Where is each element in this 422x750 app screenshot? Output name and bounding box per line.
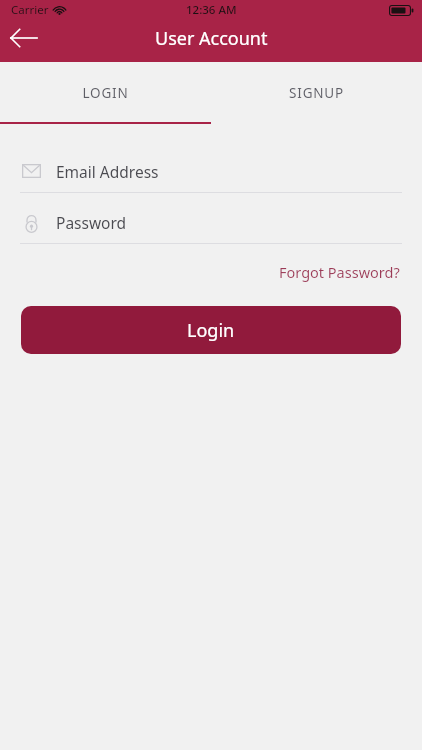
staticText: Carrier <box>11 2 49 18</box>
button[interactable]: Forgot Password? <box>277 258 402 286</box>
button[interactable]: Email Address <box>0 154 422 188</box>
staticText: Login <box>187 318 235 343</box>
button[interactable]: LOGIN <box>0 62 211 124</box>
button[interactable]: Password <box>0 205 422 239</box>
staticText: Email Address <box>56 161 159 182</box>
button[interactable]: Login <box>21 306 401 354</box>
staticText: LOGIN <box>82 84 129 102</box>
staticText: SIGNUP <box>289 84 344 102</box>
button[interactable]: SIGNUP <box>211 62 422 124</box>
staticText: User Account <box>155 26 268 51</box>
staticText: Forgot Password? <box>279 262 400 282</box>
button[interactable]: Back <box>0 14 48 62</box>
staticText: 12:36 AM <box>186 2 237 18</box>
staticText: Password <box>56 212 127 233</box>
